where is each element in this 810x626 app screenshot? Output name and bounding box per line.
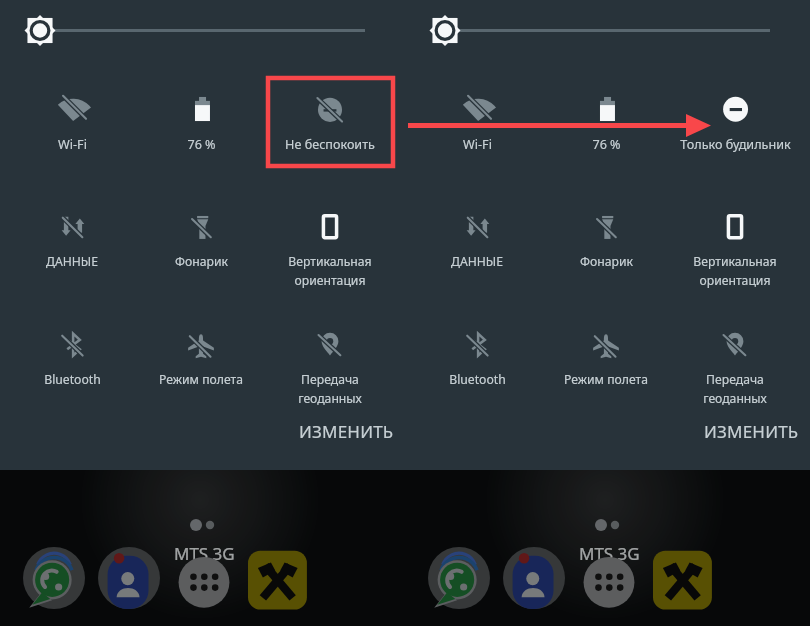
button[interactable]: Фонарик [542,205,670,297]
staticText: ИЗМЕНИТЬ [704,420,799,443]
staticText: ДАННЫЕ [46,253,98,270]
button[interactable]: Режим полета [137,323,265,415]
button[interactable]: Wi-Fi [8,86,136,178]
staticText: Вертикальная ориентация [693,253,777,288]
button[interactable]: Contacts [98,547,160,609]
button[interactable]: ИЗМЕНИТЬ [689,415,799,447]
staticText: Фонарик [580,253,633,270]
button[interactable]: Режим полета [542,323,670,415]
staticText: 76 % [187,136,216,153]
button[interactable]: Фонарик [137,205,265,297]
button[interactable]: 76 % [542,86,670,178]
staticText: Передача геоданных [703,371,767,406]
staticText: 76 % [592,136,621,153]
staticText: Wi-Fi [58,136,87,153]
button[interactable]: WhatsApp [428,547,490,609]
button[interactable]: Contacts [503,547,565,609]
button[interactable]: Передача геоданных [266,323,394,415]
button[interactable]: All apps [173,547,235,609]
staticText: MTS 3G [174,542,235,565]
button[interactable]: Brightness [405,0,810,62]
button[interactable]: Brightness [0,0,405,62]
staticText: Передача геоданных [298,371,362,406]
button[interactable]: 76 % [137,86,265,178]
staticText: Фонарик [175,253,228,270]
button[interactable]: Tools [653,547,715,609]
button[interactable]: Передача геоданных [671,323,799,415]
button[interactable]: Bluetooth [413,323,541,415]
button[interactable]: Bluetooth [8,323,136,415]
staticText: Wi-Fi [463,136,492,153]
button[interactable]: Вертикальная ориентация [671,205,799,297]
staticText: Не беспокоить [285,136,375,153]
button[interactable]: Tools [248,547,310,609]
button[interactable]: WhatsApp [23,547,85,609]
staticText: Bluetooth [449,371,506,388]
button[interactable]: Не беспокоить [266,86,394,178]
button[interactable]: ДАННЫЕ [413,205,541,297]
button[interactable]: Только будильник [671,86,799,178]
staticText: ИЗМЕНИТЬ [299,420,394,443]
staticText: Bluetooth [44,371,101,388]
button[interactable]: ДАННЫЕ [8,205,136,297]
staticText: Вертикальная ориентация [288,253,372,288]
staticText: MTS 3G [579,542,640,565]
button[interactable]: Вертикальная ориентация [266,205,394,297]
staticText: Режим полета [564,371,648,388]
staticText: ДАННЫЕ [451,253,503,270]
button[interactable]: Wi-Fi [413,86,541,178]
staticText: Только будильник [680,136,791,153]
staticText: Режим полета [159,371,243,388]
button[interactable]: All apps [578,547,640,609]
button[interactable]: ИЗМЕНИТЬ [284,415,394,447]
